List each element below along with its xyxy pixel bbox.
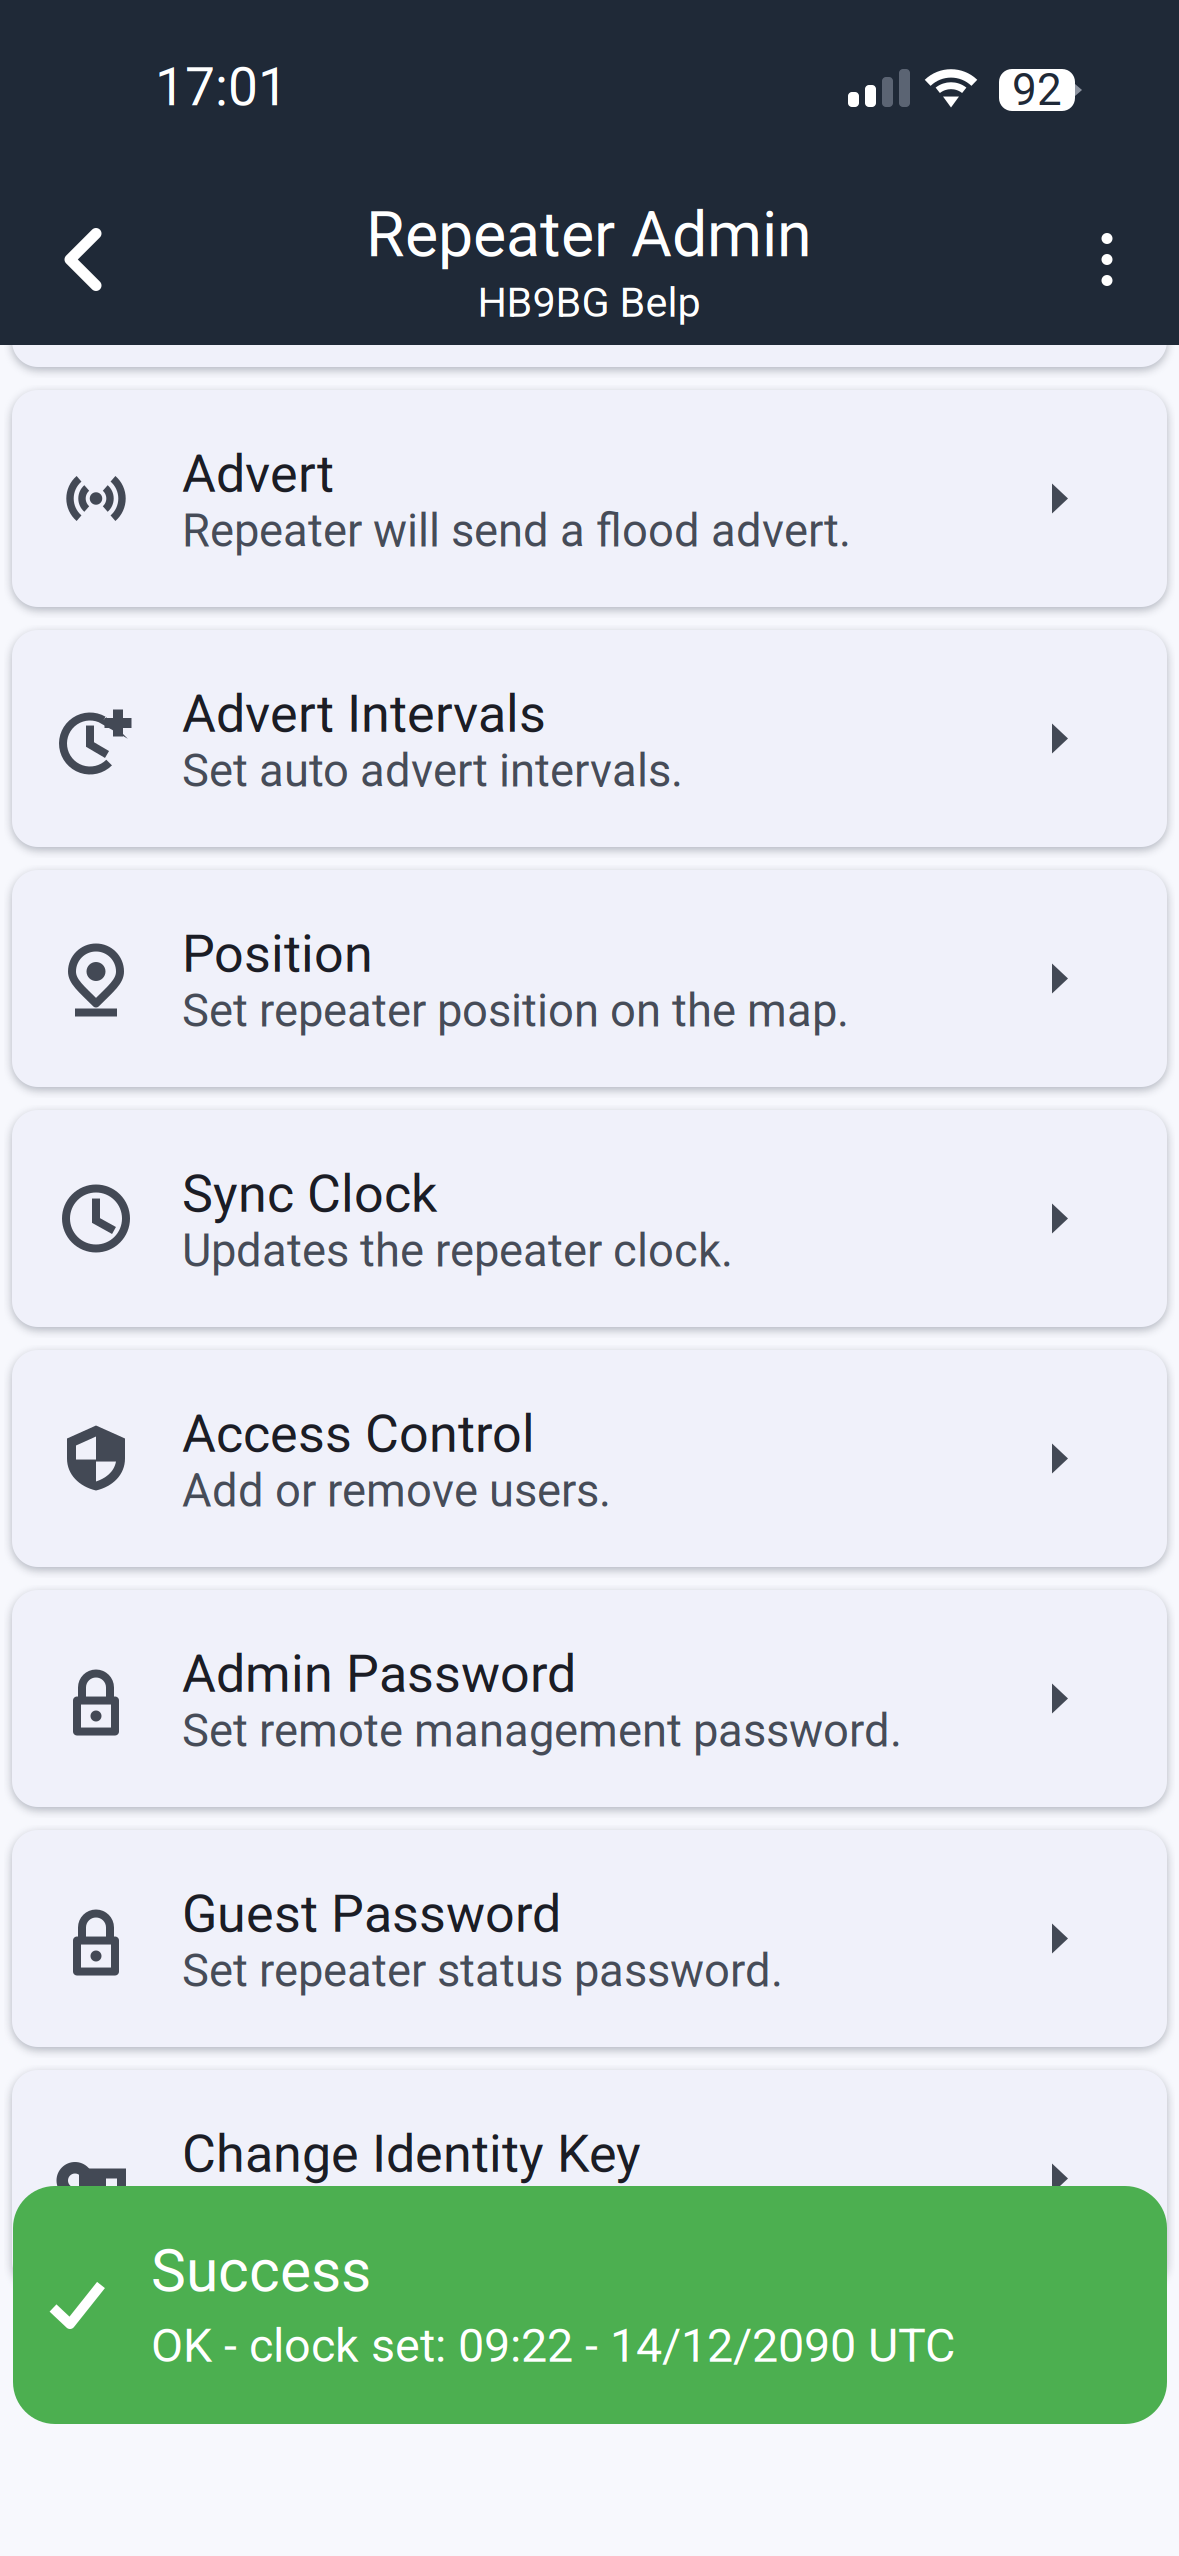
- button[interactable]: Sync Clock: [12, 1110, 1167, 1327]
- button[interactable]: Guest Password: [12, 1830, 1167, 2047]
- staticText: OK - clock set: 09:22 - 14/12/2090 UTC: [151, 2318, 955, 2373]
- button[interactable]: Change Identity Key: [12, 2070, 1167, 2287]
- staticText: Change Identity Key: [182, 2123, 641, 2184]
- staticText: HB9BG Belp: [477, 278, 700, 327]
- staticText: Set repeater status password.: [182, 1944, 783, 1997]
- button[interactable]: More options: [1032, 224, 1179, 294]
- button[interactable]: Advert: [12, 390, 1167, 607]
- staticText: Advert Intervals: [182, 683, 546, 744]
- staticText: Set repeater position on the map.: [182, 984, 849, 1037]
- staticText: Admin Password: [182, 1643, 576, 1704]
- staticText: Add or remove users.: [182, 1464, 611, 1517]
- staticText: Guest Password: [182, 1883, 561, 1944]
- button[interactable]: Access Control: [12, 1350, 1167, 1567]
- button[interactable]: Advert Intervals: [12, 630, 1167, 847]
- staticText: Success: [151, 2237, 371, 2306]
- staticText: Advert: [182, 443, 334, 504]
- staticText: Set remote management password.: [182, 1704, 902, 1757]
- staticText: Access Control: [182, 1403, 535, 1464]
- staticText: Repeater Admin: [366, 198, 812, 271]
- staticText: Repeater will send a flood advert.: [182, 504, 851, 557]
- staticText: Set auto advert intervals.: [182, 744, 683, 797]
- staticText: Replace the repeater identity key.: [182, 2184, 844, 2237]
- staticText: 92: [1012, 64, 1062, 116]
- button[interactable]: Position: [12, 870, 1167, 1087]
- staticText: Sync Clock: [182, 1163, 437, 1224]
- staticText: Position: [182, 923, 373, 984]
- staticText: Updates the repeater clock.: [182, 1224, 733, 1277]
- button[interactable]: Admin Password: [12, 1590, 1167, 1807]
- button[interactable]: Back: [0, 228, 146, 290]
- staticText: 17:01: [155, 56, 288, 118]
